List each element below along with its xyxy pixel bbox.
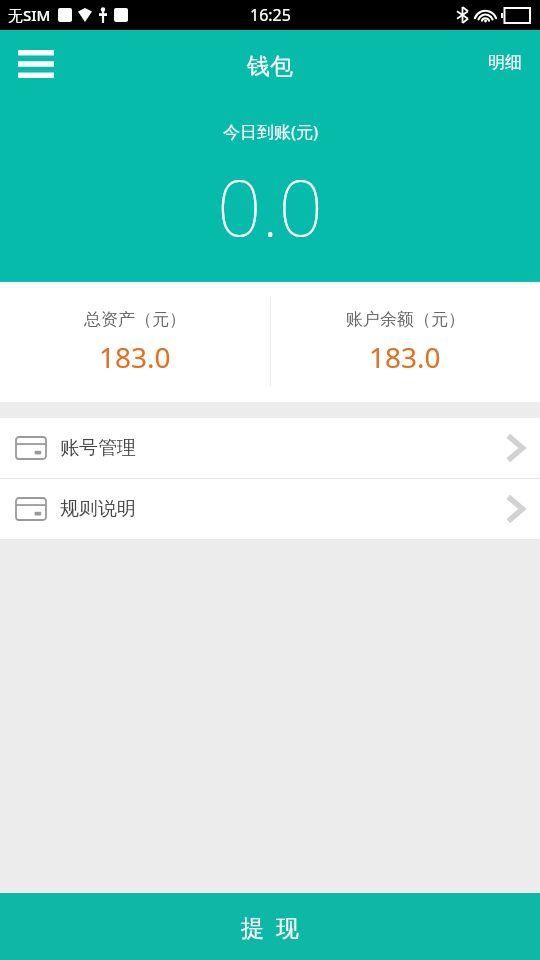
staticText: 183.0 xyxy=(369,338,441,376)
staticText: 账户余额（元） xyxy=(346,309,465,330)
button[interactable]: 账号管理 xyxy=(0,418,540,478)
button[interactable]: Menu xyxy=(10,38,62,90)
staticText: 今日到账(元) xyxy=(223,120,319,143)
staticText: 0.0 xyxy=(217,153,324,259)
staticText: 明细 xyxy=(488,52,522,73)
staticText: 无SIM xyxy=(8,5,51,25)
staticText: 总资产（元） xyxy=(84,309,186,330)
staticText: 183.0 xyxy=(99,338,171,376)
staticText: 提 现 xyxy=(241,911,299,942)
button[interactable]: 明细 xyxy=(478,44,532,81)
staticText: 16:25 xyxy=(250,4,291,26)
button[interactable]: 规则说明 xyxy=(0,479,540,539)
staticText: 账号管理 xyxy=(60,436,136,460)
staticText: 钱包 xyxy=(247,52,293,81)
button[interactable]: 提 现 xyxy=(0,893,540,960)
staticText: 规则说明 xyxy=(60,497,136,521)
